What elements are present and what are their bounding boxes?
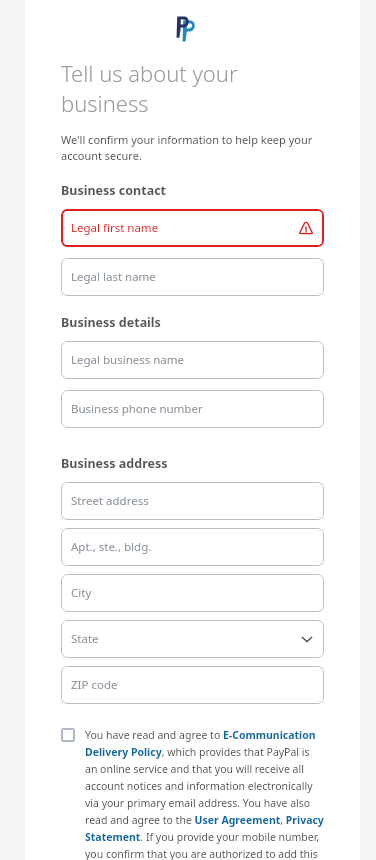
button[interactable]: Street address: [61, 482, 324, 520]
staticText: Business address: [61, 455, 168, 472]
staticText: ZIP code: [71, 677, 118, 693]
other: Error: [298, 220, 314, 236]
staticText: Business details: [61, 314, 161, 331]
button[interactable]: Agree to policies: [61, 728, 83, 750]
button[interactable]: Apt., ste., bldg.: [61, 528, 324, 566]
staticText: Tell us about your business: [61, 58, 324, 118]
staticText: Legal last name: [71, 269, 156, 285]
button[interactable]: Legal business name: [61, 341, 324, 379]
staticText: Business contact: [61, 182, 167, 199]
staticText: Legal business name: [71, 352, 185, 368]
staticText: State: [71, 631, 99, 647]
staticText: City: [71, 585, 92, 601]
button[interactable]: Legal last name: [61, 258, 324, 296]
button[interactable]: ZIP code: [61, 666, 324, 704]
button[interactable]: Business phone number: [61, 390, 324, 428]
staticText: Legal first name: [71, 220, 159, 236]
staticText: We'll confirm your information to help k…: [61, 132, 324, 164]
other: Open dropdown: [300, 632, 314, 646]
button[interactable]: Legal first name: [61, 209, 324, 247]
staticText: You have read and agree to E-Communicati…: [85, 728, 324, 860]
button[interactable]: City: [61, 574, 324, 612]
staticText: Apt., ste., bldg.: [71, 539, 152, 555]
staticText: Business phone number: [71, 401, 203, 417]
button[interactable]: State: [61, 620, 324, 658]
staticText: Street address: [71, 493, 149, 509]
